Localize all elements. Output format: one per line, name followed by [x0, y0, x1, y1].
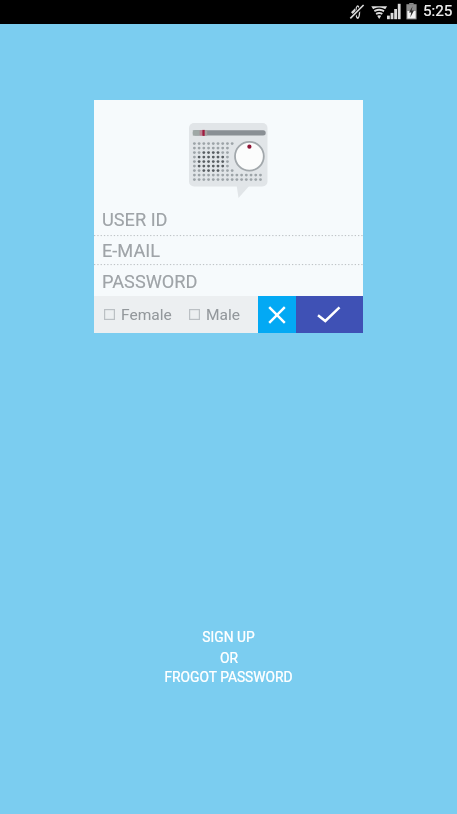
staticText: PASSWORD — [102, 271, 198, 292]
staticText: Female — [121, 306, 172, 324]
staticText: 5:25 — [423, 2, 453, 20]
button[interactable]: Male — [189, 296, 240, 333]
staticText: Male — [206, 306, 240, 324]
button[interactable]: Female — [104, 296, 172, 333]
button[interactable]: OR — [220, 650, 238, 666]
staticText: USER ID — [102, 209, 168, 230]
button[interactable]: Cancel — [258, 296, 296, 333]
button[interactable]: FROGOT PASSWORD — [164, 669, 293, 685]
button[interactable]: E-MAIL — [94, 235, 363, 265]
button[interactable]: Confirm — [296, 296, 363, 333]
staticText: E-MAIL — [102, 240, 161, 261]
button[interactable]: USER ID — [94, 205, 363, 235]
button[interactable]: SIGN UP — [202, 629, 255, 645]
button[interactable]: PASSWORD — [94, 265, 363, 296]
